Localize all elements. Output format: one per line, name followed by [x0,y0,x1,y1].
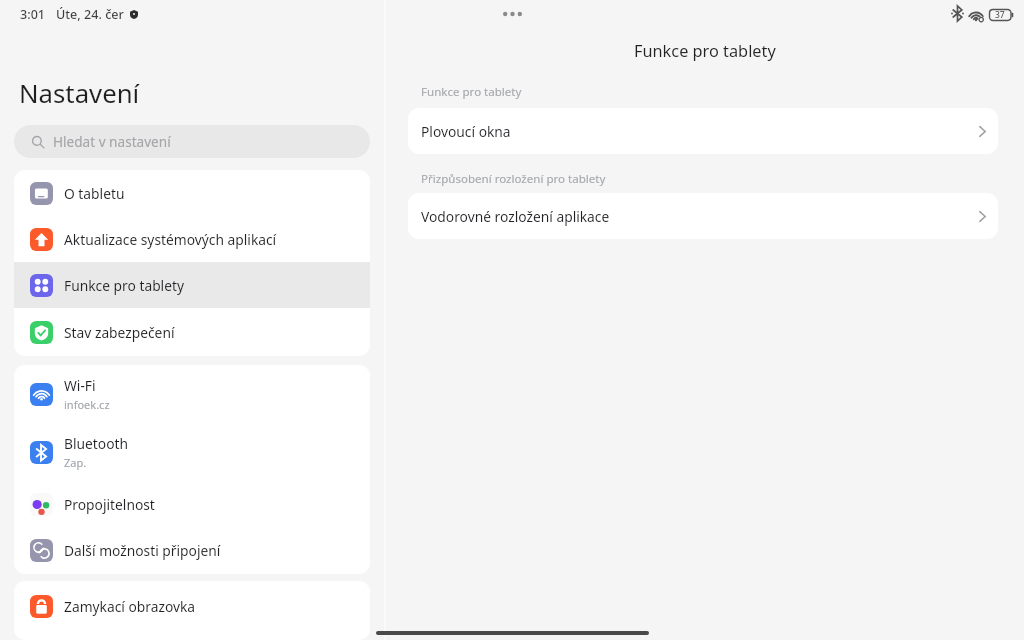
button[interactable]: O tabletu [14,170,370,216]
button[interactable]: Wi-Fi [14,365,370,423]
button[interactable]: Bluetooth [14,423,370,481]
staticText: Plovoucí okna [421,122,511,141]
button[interactable]: Vodorovné rozložení aplikace [408,193,998,239]
staticText: Propojitelnost [64,495,155,514]
staticText: Přizpůsobení rozložení pro tablety [421,171,606,187]
staticText: Nastavení [19,75,140,110]
staticText: infoek.cz [64,397,110,412]
staticText: Bluetooth [64,434,129,453]
staticText: Úte, 24. čer [56,6,124,23]
staticText: O tabletu [64,184,125,203]
staticText: Hledat v nastavení [53,132,171,151]
staticText: 37 [995,9,1005,21]
button[interactable]: Plovoucí okna [408,108,998,154]
staticText: Zamykací obrazovka [64,597,196,616]
button[interactable]: Další možnosti připojení [14,527,370,574]
button[interactable]: Hledat v nastavení [14,125,370,158]
staticText: Stav zabezpečení [64,323,175,342]
button[interactable]: More options [501,5,524,22]
staticText: Zap. [64,455,87,470]
button[interactable]: Zamykací obrazovka [14,581,370,631]
button[interactable]: Funkce pro tablety [14,262,370,308]
staticText: Aktualizace systémových aplikací [64,230,277,249]
staticText: Funkce pro tablety [634,40,776,62]
button[interactable]: Aktualizace systémových aplikací [14,216,370,262]
staticText: Funkce pro tablety [64,276,184,295]
staticText: 3:01 [20,6,46,23]
staticText: Další možnosti připojení [64,541,221,560]
button[interactable]: Propojitelnost [14,481,370,527]
staticText: Funkce pro tablety [421,84,522,100]
staticText: Vodorovné rozložení aplikace [421,207,610,226]
button[interactable]: Stav zabezpečení [14,308,370,356]
staticText: Wi-Fi [64,376,96,395]
